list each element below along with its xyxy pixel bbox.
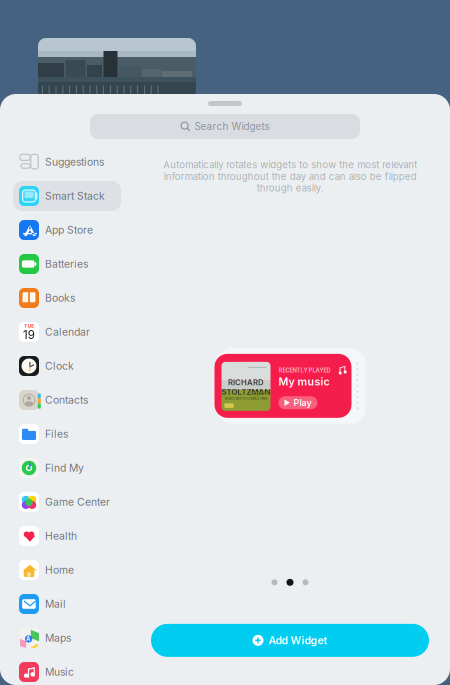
- staticText: Contacts: [45, 394, 88, 406]
- staticText: Add Widget: [268, 634, 327, 647]
- button[interactable]: Music: [13, 657, 121, 685]
- button[interactable]: Search Widgets: [90, 114, 360, 139]
- staticText: Maps: [45, 632, 71, 644]
- staticText: Music: [45, 666, 74, 678]
- staticText: Books: [45, 292, 75, 304]
- button[interactable]: Home: [13, 555, 121, 585]
- button[interactable]: App Store: [13, 215, 121, 245]
- button[interactable]: Mail: [13, 589, 121, 619]
- staticText: RICHARD: [228, 378, 264, 387]
- staticText: 19: [22, 328, 35, 343]
- staticText: Find My: [45, 462, 84, 474]
- staticText: Automatically rotates widgets to show th…: [163, 159, 417, 194]
- staticText: MUSIC WITH FLEXIBLE HAIR: [224, 397, 267, 400]
- staticText: Home: [45, 564, 74, 576]
- staticText: Smart Stack: [45, 190, 105, 202]
- button[interactable]: Books: [13, 283, 121, 313]
- staticText: Search Widgets: [194, 120, 269, 132]
- button[interactable]: Contacts: [13, 385, 121, 415]
- staticText: STOLTZMAN: [221, 387, 270, 397]
- staticText: My music: [278, 375, 329, 388]
- staticText: Clock: [45, 360, 74, 372]
- button[interactable]: A: [13, 623, 121, 653]
- staticText: Mail: [45, 598, 66, 610]
- staticText: Game Center: [45, 496, 110, 508]
- staticText: Play: [293, 397, 311, 408]
- staticText: A: [26, 635, 31, 643]
- button[interactable]: Batteries: [13, 249, 121, 279]
- staticText: Files: [45, 428, 68, 440]
- button[interactable]: Add Widget: [151, 624, 429, 657]
- button[interactable]: TUE: [13, 317, 121, 347]
- button[interactable]: Files: [13, 419, 121, 449]
- staticText: App Store: [45, 224, 93, 236]
- staticText: Batteries: [45, 258, 88, 270]
- staticText: RECENTLY PLAYED: [278, 367, 330, 374]
- button[interactable]: Game Center: [13, 487, 121, 517]
- staticText: TUE: [23, 322, 34, 329]
- staticText: Suggestions: [45, 156, 104, 168]
- button[interactable]: Smart Stack: [13, 181, 121, 211]
- button[interactable]: Health: [13, 521, 121, 551]
- button[interactable]: Find My: [13, 453, 121, 483]
- button[interactable]: Suggestions: [13, 147, 121, 177]
- staticText: Health: [45, 530, 77, 542]
- staticText: Calendar: [45, 326, 90, 338]
- button[interactable]: Clock: [13, 351, 121, 381]
